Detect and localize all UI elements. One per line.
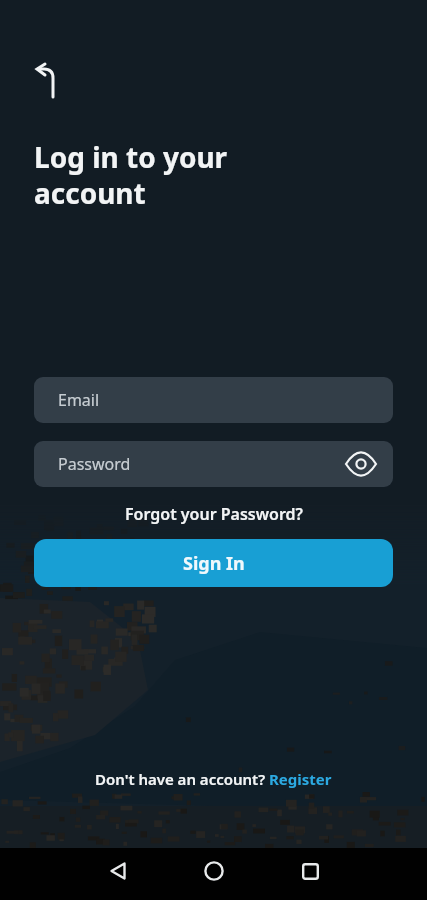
staticText: Password — [58, 453, 131, 475]
staticText: Forgot your Password? — [125, 503, 303, 525]
button[interactable]: Forgot your Password? — [125, 503, 303, 525]
button[interactable]: Sign In — [34, 539, 393, 587]
button[interactable] — [94, 847, 142, 895]
staticText: Sign In — [183, 551, 245, 576]
button[interactable] — [286, 847, 334, 895]
staticText: Email — [58, 389, 100, 411]
button[interactable]: Password — [34, 441, 393, 487]
button[interactable] — [22, 58, 70, 106]
button[interactable] — [190, 847, 238, 895]
staticText: Don't have an account? Register — [95, 769, 332, 789]
button[interactable]: Don't have an account? Register — [95, 769, 332, 789]
button[interactable]: Email — [34, 377, 393, 423]
staticText: Log in to your account — [34, 138, 228, 212]
